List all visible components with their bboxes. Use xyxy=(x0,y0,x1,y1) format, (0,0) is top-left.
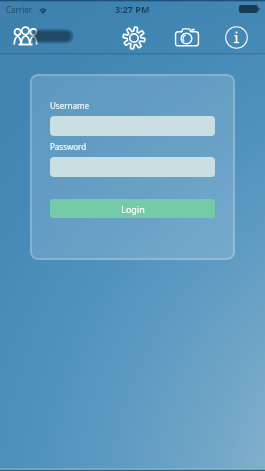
button[interactable]: Account xyxy=(8,22,76,50)
button[interactable]: Camera xyxy=(173,24,201,52)
staticText: Carrier xyxy=(6,4,33,15)
staticText: Login xyxy=(121,203,145,215)
button[interactable]: Info xyxy=(224,25,249,50)
button[interactable]: Settings xyxy=(121,25,147,51)
staticText: Password xyxy=(50,141,87,152)
button[interactable]: Login xyxy=(50,199,215,218)
staticText: Username xyxy=(50,100,89,111)
button[interactable] xyxy=(50,157,215,177)
button[interactable] xyxy=(50,116,215,136)
staticText: 3:27 PM xyxy=(115,3,150,15)
